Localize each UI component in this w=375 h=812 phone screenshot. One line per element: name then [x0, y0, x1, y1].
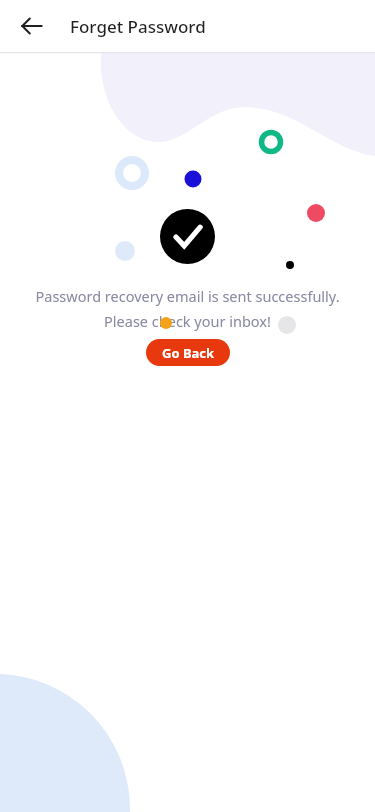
staticText: Go Back [162, 344, 215, 362]
staticText: Forget Password [70, 15, 206, 38]
staticText: Password recovery email is sent successf… [18, 286, 357, 331]
button[interactable]: Go Back [146, 339, 230, 366]
button[interactable]: Back [10, 4, 54, 48]
